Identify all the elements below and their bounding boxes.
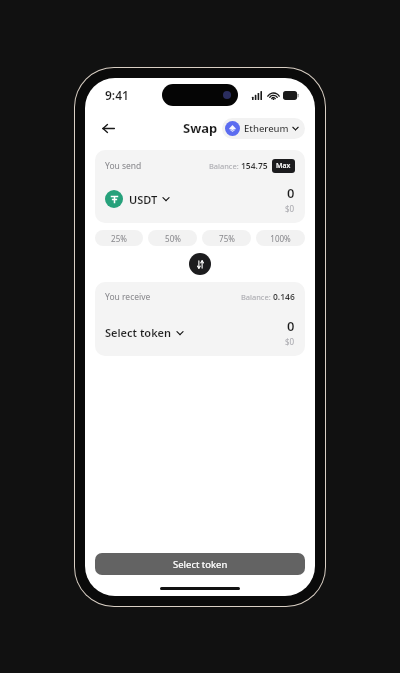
button[interactable]: Max <box>272 159 295 173</box>
button[interactable]: Select token <box>95 553 305 575</box>
button[interactable]: Swap direction <box>189 253 211 275</box>
staticText: $0 <box>285 203 295 214</box>
button[interactable]: Back <box>95 115 121 141</box>
button[interactable]: USDT <box>105 190 170 208</box>
button[interactable]: Select token <box>105 325 184 340</box>
button[interactable]: Ethereum <box>222 118 305 139</box>
staticText: Balance: <box>241 292 271 302</box>
staticText: 50% <box>165 233 181 244</box>
staticText: 0 <box>287 184 295 202</box>
staticText: USDT <box>129 192 158 207</box>
staticText: $0 <box>285 336 295 347</box>
staticText: Balance: <box>209 161 239 171</box>
staticText: 0.146 <box>273 291 295 303</box>
staticText: 25% <box>111 233 127 244</box>
staticText: Select token <box>105 325 172 340</box>
button[interactable]: You receive <box>95 282 305 356</box>
staticText: 9:41 <box>105 87 129 103</box>
staticText: 0 <box>287 317 295 335</box>
staticText: 75% <box>219 233 235 244</box>
button[interactable]: 75% <box>202 230 251 246</box>
button[interactable]: 50% <box>148 230 197 246</box>
staticText: Select token <box>173 558 228 571</box>
button[interactable]: 25% <box>95 230 143 246</box>
staticText: 100% <box>270 233 291 244</box>
button[interactable]: 100% <box>256 230 305 246</box>
staticText: You send <box>105 160 142 172</box>
staticText: Max <box>276 161 291 171</box>
staticText: You receive <box>105 291 151 303</box>
staticText: Swap <box>183 119 218 137</box>
button[interactable]: You send <box>95 150 305 223</box>
staticText: 154.75 <box>241 160 268 172</box>
staticText: Ethereum <box>244 122 289 135</box>
